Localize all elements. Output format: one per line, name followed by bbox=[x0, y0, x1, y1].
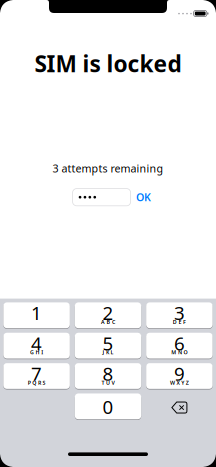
staticText: 3 bbox=[174, 300, 185, 325]
button[interactable]: 6 bbox=[146, 333, 213, 359]
staticText: 6 bbox=[174, 331, 185, 356]
staticText: 2 bbox=[102, 300, 113, 325]
staticText: TUV bbox=[101, 379, 115, 386]
staticText: OK bbox=[136, 190, 151, 204]
staticText: 0 bbox=[102, 394, 113, 419]
button[interactable]: 5 bbox=[75, 333, 141, 359]
staticText: WXYZ bbox=[170, 379, 189, 386]
staticText: 3 attempts remaining bbox=[52, 161, 163, 175]
staticText: ABC bbox=[101, 318, 115, 325]
staticText: PQRS bbox=[28, 379, 45, 386]
staticText: 9 bbox=[174, 361, 185, 386]
button[interactable]: OK bbox=[133, 189, 153, 205]
staticText: 8 bbox=[102, 361, 113, 386]
button[interactable]: PIN entry bbox=[73, 189, 131, 206]
staticText: GHI bbox=[30, 349, 43, 356]
button[interactable]: 7 bbox=[3, 363, 70, 389]
button[interactable]: 2 bbox=[75, 302, 141, 328]
button[interactable]: 8 bbox=[75, 363, 141, 389]
staticText: 7 bbox=[31, 361, 42, 386]
staticText: JKL bbox=[102, 349, 114, 356]
staticText: 5 bbox=[102, 331, 113, 356]
button[interactable]: 3 bbox=[146, 302, 213, 328]
button[interactable]: 1 bbox=[3, 302, 70, 328]
staticText: DEF bbox=[173, 318, 186, 325]
button[interactable]: 0 bbox=[75, 393, 141, 419]
staticText: MNO bbox=[171, 349, 187, 356]
staticText: SIM is locked bbox=[34, 48, 181, 78]
staticText: 4 bbox=[31, 331, 42, 356]
staticText: 1 bbox=[31, 300, 42, 325]
button[interactable]: Delete bbox=[167, 398, 191, 416]
button[interactable]: 4 bbox=[3, 333, 70, 359]
button[interactable]: 9 bbox=[146, 363, 213, 389]
